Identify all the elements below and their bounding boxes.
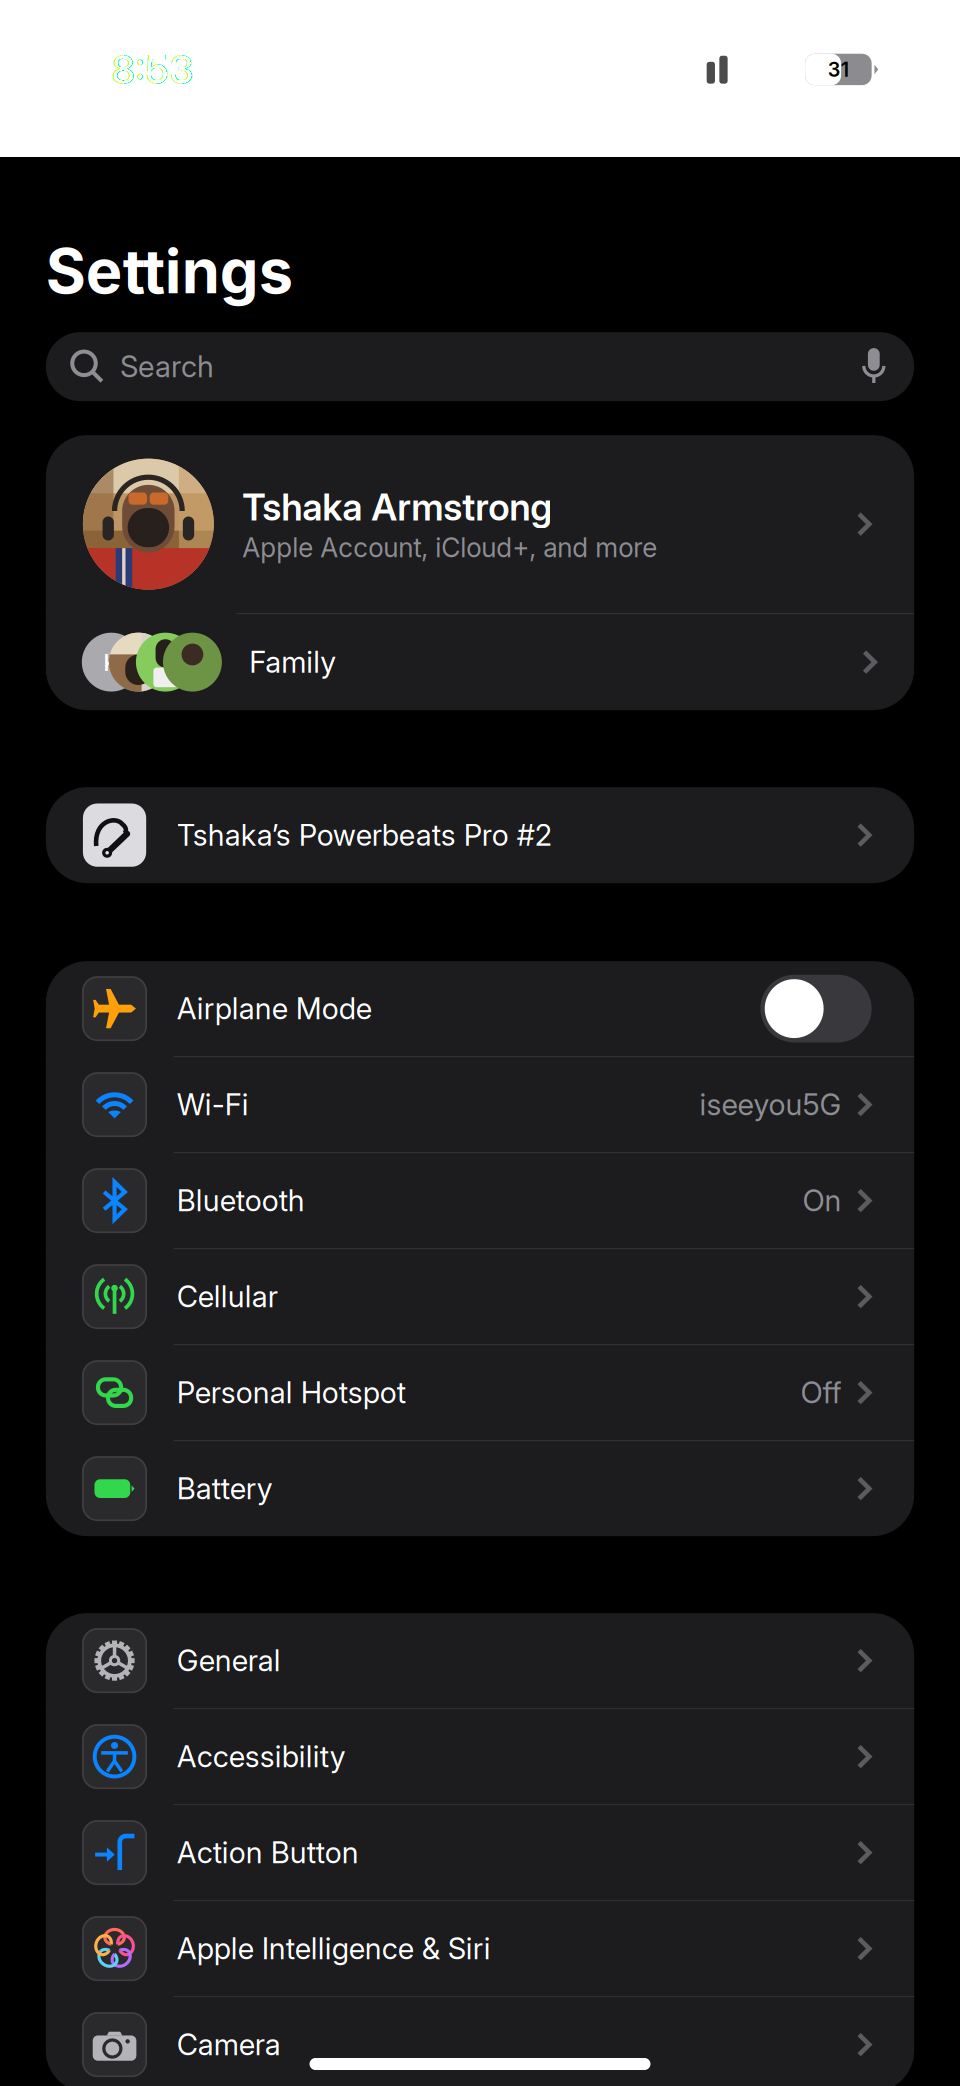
button[interactable]: Airplane Mode: [46, 961, 914, 1056]
staticText: Bluetooth: [177, 1183, 305, 1218]
staticText: Accessibility: [177, 1739, 346, 1774]
staticText: Camera: [177, 2027, 281, 2062]
button[interactable]: Apple Intelligence & Siri: [46, 1901, 914, 1996]
staticText: Search: [120, 349, 214, 384]
button[interactable]: Search: [46, 332, 914, 401]
staticText: Battery: [177, 1471, 273, 1506]
staticText: Family: [249, 644, 336, 680]
button[interactable]: General: [46, 1613, 914, 1708]
staticText: Wi-Fi: [177, 1087, 249, 1122]
staticText: Apple Account, iCloud+, and more: [242, 532, 657, 563]
button[interactable]: Wi-Fi: [46, 1057, 914, 1152]
staticText: Cellular: [177, 1279, 278, 1314]
staticText: Off: [800, 1375, 841, 1410]
staticText: Tshaka’s Powerbeats Pro #2: [177, 817, 552, 853]
button[interactable]: Airplane Mode: [760, 975, 872, 1042]
button[interactable]: Bluetooth: [46, 1153, 914, 1248]
staticText: On: [802, 1183, 841, 1218]
button[interactable]: K: [46, 614, 914, 710]
staticText: iseeyou5G: [699, 1087, 841, 1122]
staticText: Tshaka Armstrong: [242, 485, 552, 529]
button[interactable]: Camera: [46, 1997, 914, 2086]
staticText: K: [103, 647, 119, 677]
staticText: 31: [828, 57, 849, 81]
button[interactable]: Battery: [46, 1441, 914, 1536]
staticText: General: [177, 1643, 281, 1678]
button[interactable]: Cellular: [46, 1249, 914, 1344]
button[interactable]: Tshaka’s Powerbeats Pro #2: [46, 787, 914, 883]
button[interactable]: Action Button: [46, 1805, 914, 1900]
button[interactable]: Accessibility: [46, 1709, 914, 1804]
staticText: Settings: [46, 234, 293, 308]
staticText: Apple Intelligence & Siri: [177, 1931, 491, 1966]
button[interactable]: Tshaka Armstrong: [46, 435, 914, 613]
staticText: 8:53: [111, 45, 194, 94]
staticText: Action Button: [177, 1835, 359, 1870]
staticText: Personal Hotspot: [177, 1375, 406, 1410]
button[interactable]: Personal Hotspot: [46, 1345, 914, 1440]
staticText: Airplane Mode: [177, 991, 372, 1026]
